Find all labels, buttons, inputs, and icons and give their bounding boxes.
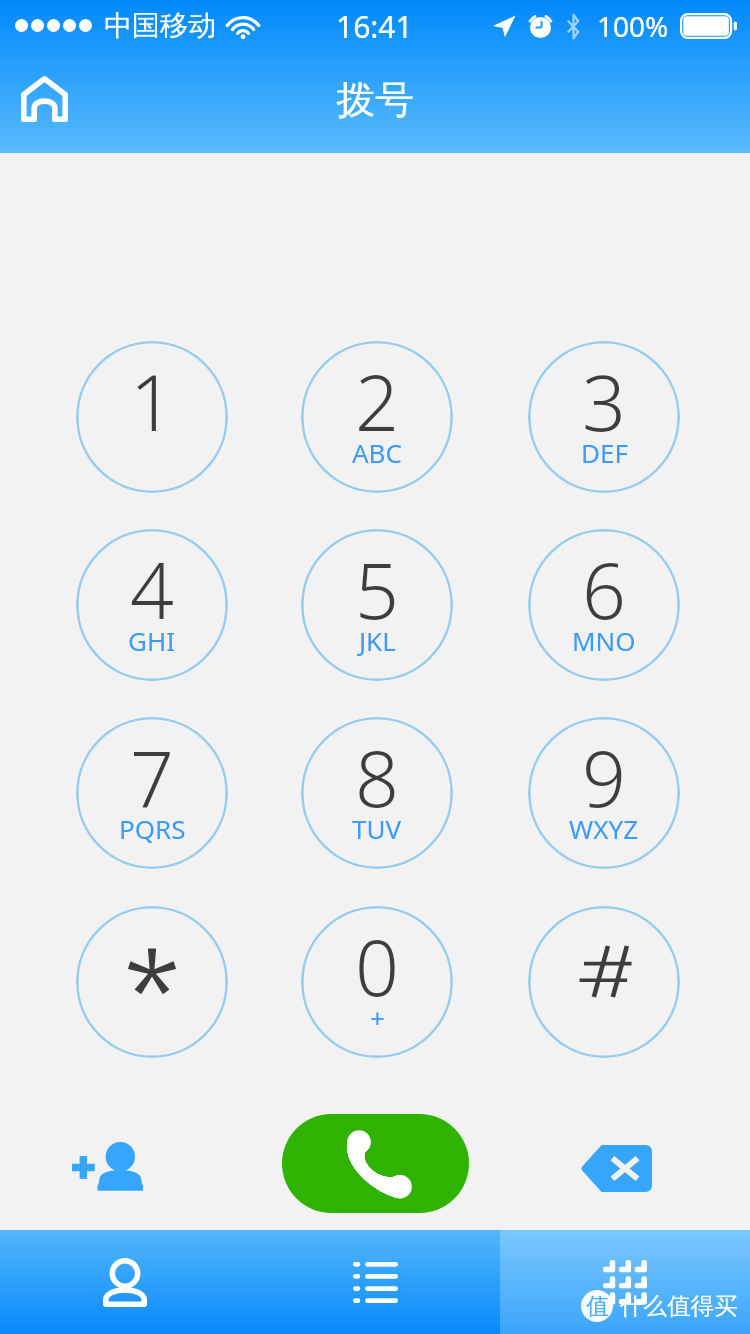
- button[interactable]: 5: [301, 529, 453, 681]
- button[interactable]: Recents: [250, 1230, 500, 1334]
- staticText: 16:41: [336, 6, 413, 47]
- staticText: GHI: [128, 623, 176, 658]
- staticText: 8: [355, 725, 399, 830]
- staticText: 拨号: [0, 75, 750, 124]
- button[interactable]: Home: [21, 76, 68, 122]
- staticText: 2: [355, 349, 399, 454]
- button[interactable]: 1: [76, 341, 228, 493]
- staticText: 3: [582, 349, 626, 454]
- staticText: JKL: [359, 623, 396, 658]
- button[interactable]: Call: [282, 1114, 469, 1213]
- staticText: 值: [586, 1292, 609, 1321]
- staticText: 5: [355, 537, 399, 642]
- staticText: ABC: [352, 435, 402, 470]
- staticText: 7: [130, 725, 174, 830]
- button[interactable]: 2: [301, 341, 453, 493]
- button[interactable]: 3: [528, 341, 680, 493]
- button[interactable]: Contacts: [0, 1230, 250, 1334]
- staticText: WXYZ: [569, 811, 639, 846]
- staticText: 1: [130, 349, 174, 454]
- button[interactable]: Keypad: [500, 1230, 750, 1334]
- button[interactable]: 9: [528, 717, 680, 869]
- staticText: 中国移动: [104, 8, 216, 43]
- button[interactable]: [528, 906, 680, 1058]
- staticText: MNO: [572, 623, 636, 658]
- staticText: 9: [582, 725, 626, 830]
- staticText: DEF: [581, 435, 628, 470]
- button[interactable]: 8: [301, 717, 453, 869]
- staticText: 100%: [597, 7, 669, 45]
- button[interactable]: Add contact: [36, 1127, 180, 1207]
- button[interactable]: Delete: [556, 1129, 676, 1207]
- staticText: TUV: [352, 811, 402, 846]
- button[interactable]: 6: [528, 529, 680, 681]
- button[interactable]: 0: [301, 906, 453, 1058]
- button[interactable]: 7: [76, 717, 228, 869]
- staticText: 6: [582, 537, 626, 642]
- staticText: 4: [130, 537, 174, 642]
- button[interactable]: [76, 906, 228, 1058]
- button[interactable]: 4: [76, 529, 228, 681]
- staticText: 0: [355, 914, 399, 1019]
- staticText: 什么值得买: [620, 1291, 738, 1321]
- staticText: PQRS: [119, 811, 186, 846]
- staticText: +: [370, 1000, 385, 1035]
